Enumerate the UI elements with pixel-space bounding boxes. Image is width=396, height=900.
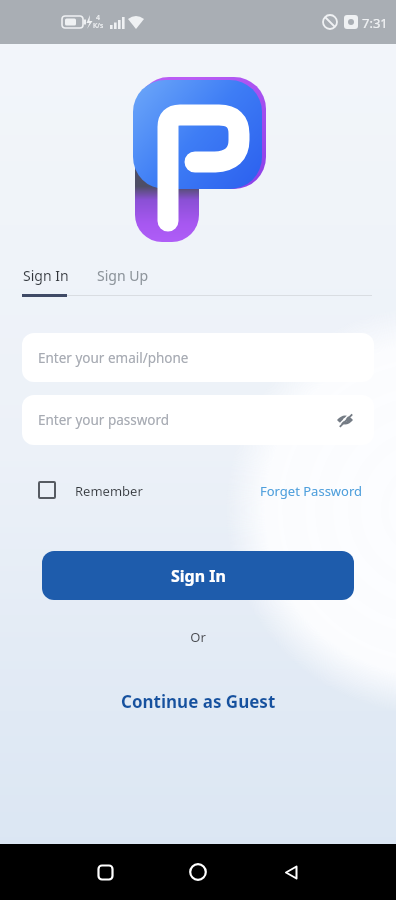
button[interactable]: Forget Password [252,474,370,504]
button[interactable] [156,844,240,900]
staticText: K/s [93,21,104,31]
staticText: Sign Up [97,266,149,285]
button[interactable]: Sign Up [86,258,156,292]
button[interactable]: Remember [30,472,160,508]
button[interactable]: Enter your email/phone [22,333,374,382]
button[interactable]: Sign In [42,551,354,600]
staticText: 4 [96,13,101,23]
staticText: Continue as Guest [121,690,276,713]
button[interactable] [249,844,333,900]
button[interactable]: Continue as Guest [98,682,298,720]
staticText: Enter your email/phone [38,349,189,367]
button[interactable] [63,844,147,900]
staticText: 7:31 [362,14,388,32]
staticText: Forget Password [260,482,363,500]
button[interactable]: Enter your password [22,395,374,445]
staticText: Sign In [23,266,69,285]
staticText: Remember [75,482,143,500]
button[interactable]: Sign In [10,258,80,292]
staticText: Or [0,628,396,646]
staticText: Sign In [171,565,226,587]
staticText: Enter your password [38,411,170,429]
